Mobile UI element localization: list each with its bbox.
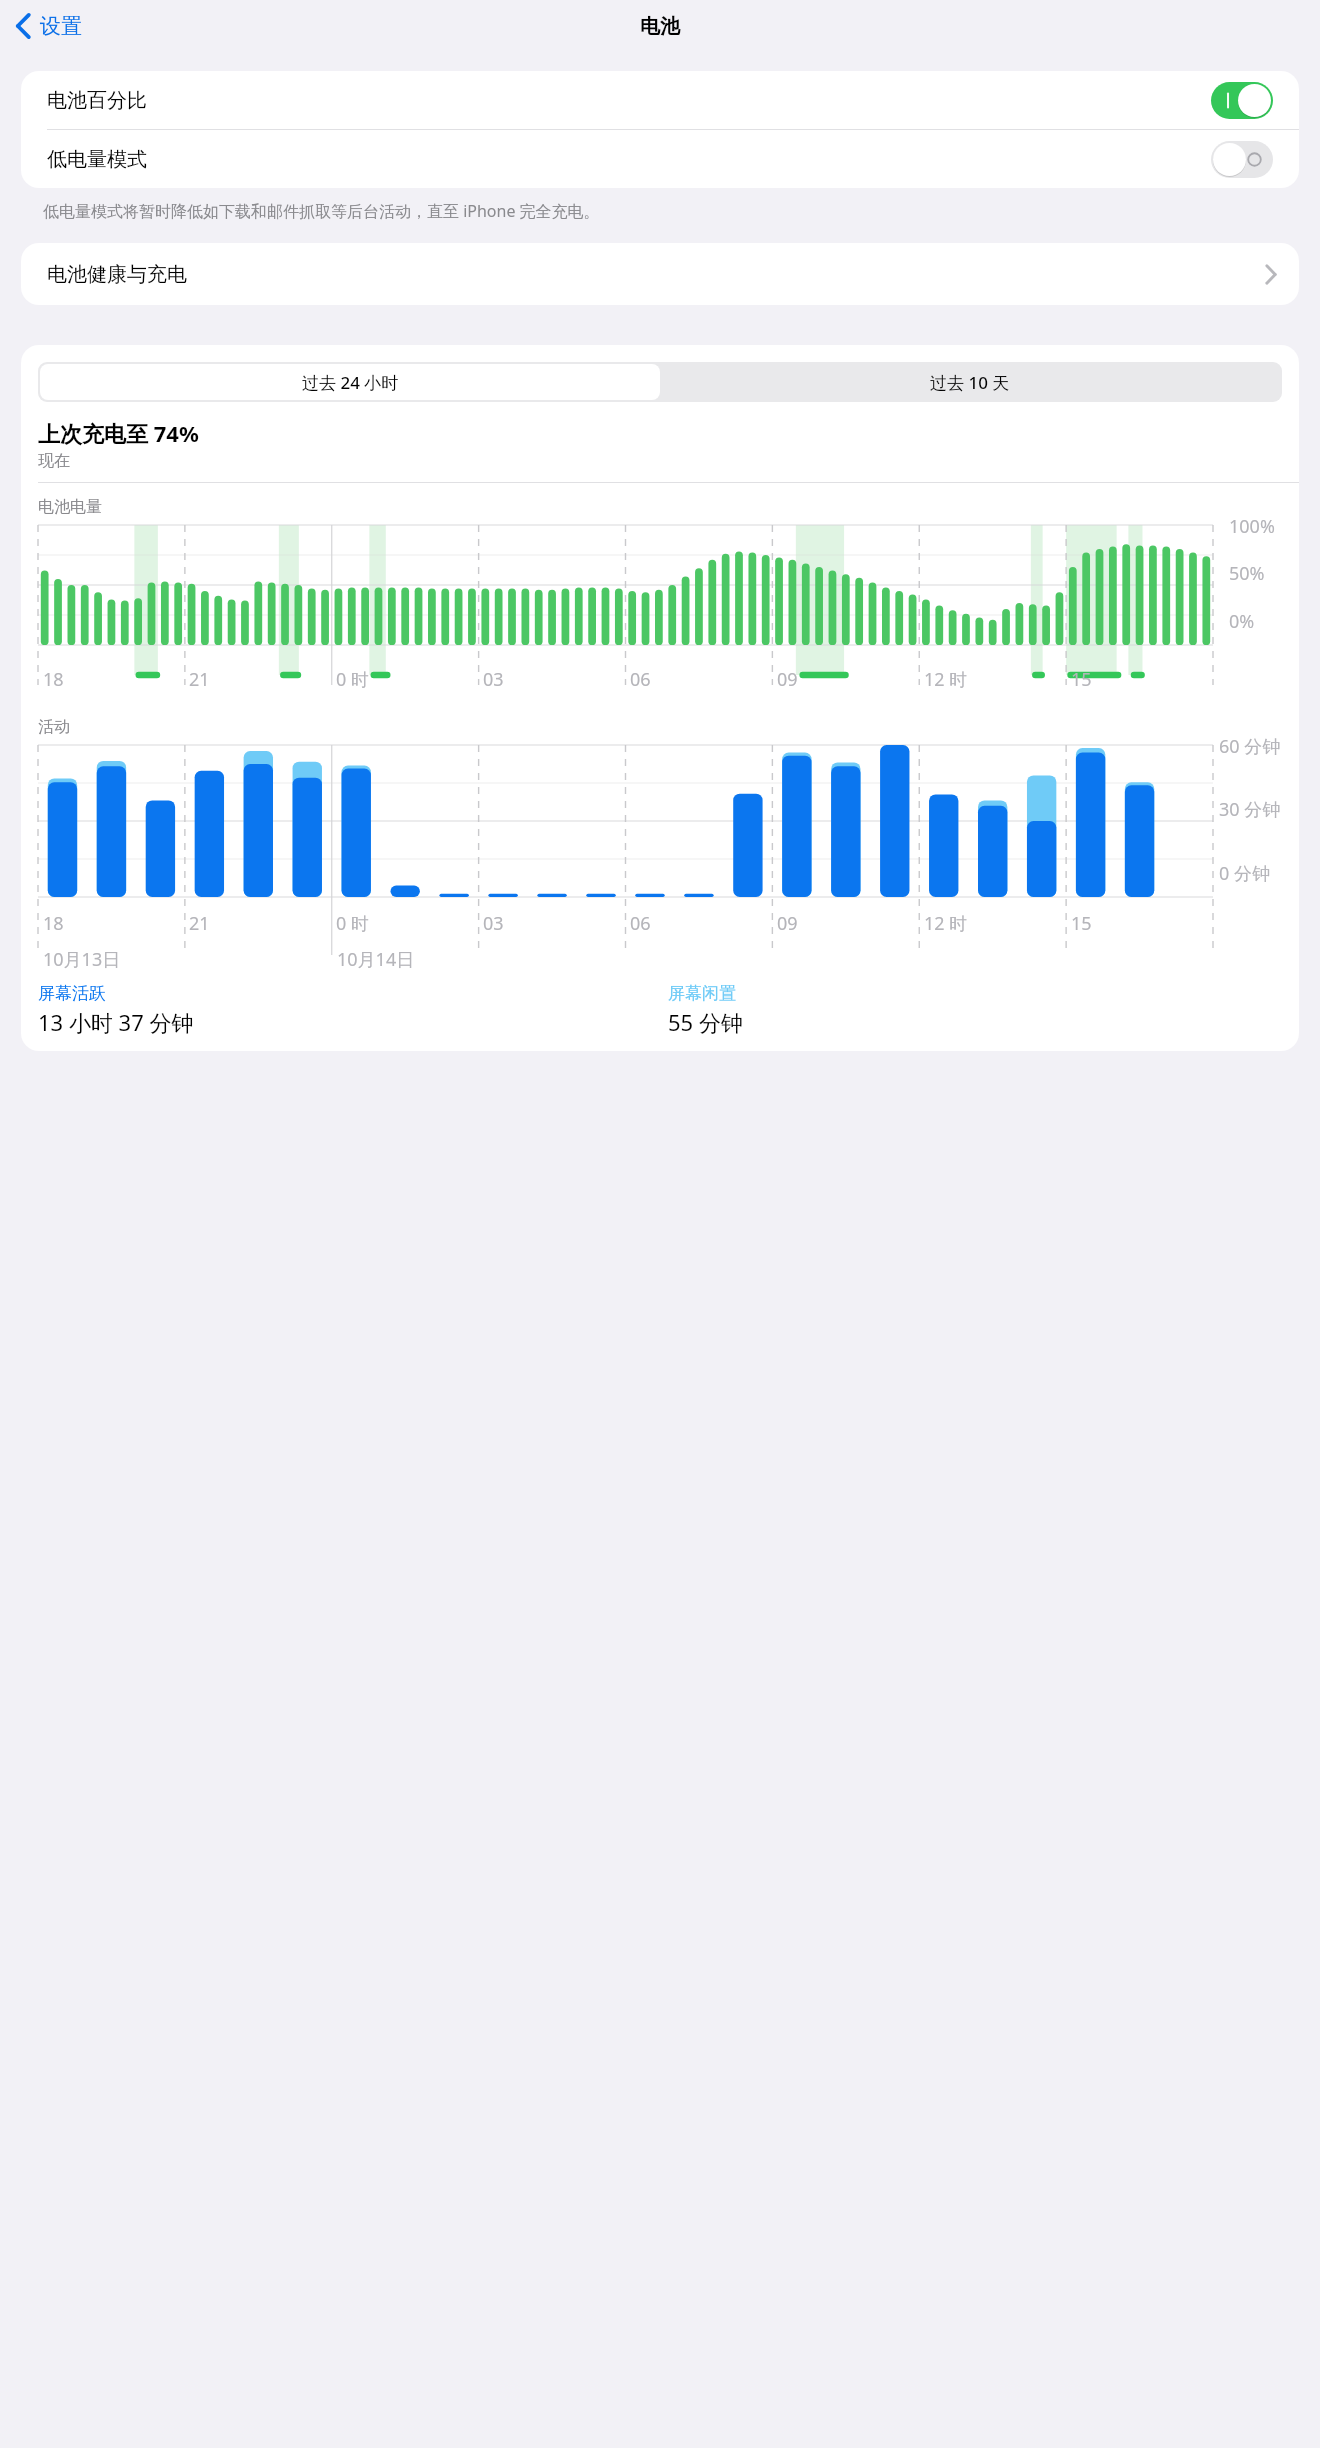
staticText: 13 小时 37 分钟 bbox=[38, 1007, 194, 1037]
staticText: 10月14日 bbox=[337, 947, 415, 972]
staticText: 15 bbox=[1071, 667, 1092, 692]
staticText: 60 分钟 bbox=[1219, 734, 1281, 759]
staticText: 09 bbox=[777, 911, 798, 936]
staticText: 电池电量 bbox=[38, 497, 102, 517]
staticText: 过去 24 小时 bbox=[302, 371, 399, 394]
staticText: 过去 10 天 bbox=[930, 371, 1010, 394]
staticText: 09 bbox=[777, 667, 798, 692]
button[interactable]: 低电量模式 bbox=[21, 130, 1299, 188]
staticText: 0 分钟 bbox=[1219, 861, 1270, 886]
staticText: 0% bbox=[1229, 609, 1255, 634]
button[interactable]: 电池健康与充电 bbox=[21, 243, 1299, 305]
staticText: 电池健康与充电 bbox=[47, 262, 187, 287]
staticText: 10月13日 bbox=[43, 947, 121, 972]
staticText: 低电量模式 bbox=[47, 147, 147, 172]
staticText: 低电量模式将暂时降低如下载和邮件抓取等后台活动，直至 iPhone 完全充电。 bbox=[43, 200, 600, 222]
staticText: 电池百分比 bbox=[47, 88, 147, 113]
staticText: 上次充电至 74% bbox=[38, 418, 199, 448]
staticText: 12 时 bbox=[924, 911, 968, 936]
button[interactable]: 开启 bbox=[1211, 82, 1273, 119]
staticText: 03 bbox=[483, 911, 504, 936]
staticText: 06 bbox=[630, 667, 651, 692]
staticText: 18 bbox=[43, 667, 64, 692]
staticText: 21 bbox=[189, 667, 210, 692]
button[interactable]: 关闭 bbox=[1211, 141, 1273, 178]
staticText: 30 分钟 bbox=[1219, 797, 1281, 822]
staticText: 0 时 bbox=[336, 667, 369, 692]
staticText: 18 bbox=[43, 911, 64, 936]
staticText: 电池 bbox=[640, 14, 680, 39]
staticText: 屏幕活跃 bbox=[38, 983, 106, 1004]
staticText: 0 时 bbox=[336, 911, 369, 936]
staticText: 50% bbox=[1229, 561, 1265, 586]
staticText: 06 bbox=[630, 911, 651, 936]
button[interactable]: 过去 24 小时 bbox=[40, 364, 660, 400]
button[interactable]: 过去 10 天 bbox=[660, 364, 1280, 400]
staticText: 设置 bbox=[40, 13, 82, 39]
staticText: 屏幕闲置 bbox=[668, 983, 736, 1004]
button[interactable]: 电池百分比 bbox=[21, 71, 1299, 129]
staticText: 活动 bbox=[38, 717, 70, 737]
staticText: 15 bbox=[1071, 911, 1092, 936]
staticText: 12 时 bbox=[924, 667, 968, 692]
staticText: 21 bbox=[189, 911, 210, 936]
staticText: 100% bbox=[1229, 514, 1275, 539]
staticText: 03 bbox=[483, 667, 504, 692]
staticText: 现在 bbox=[38, 451, 70, 471]
button[interactable]: 设置 bbox=[10, 7, 86, 45]
staticText: 55 分钟 bbox=[668, 1007, 743, 1037]
